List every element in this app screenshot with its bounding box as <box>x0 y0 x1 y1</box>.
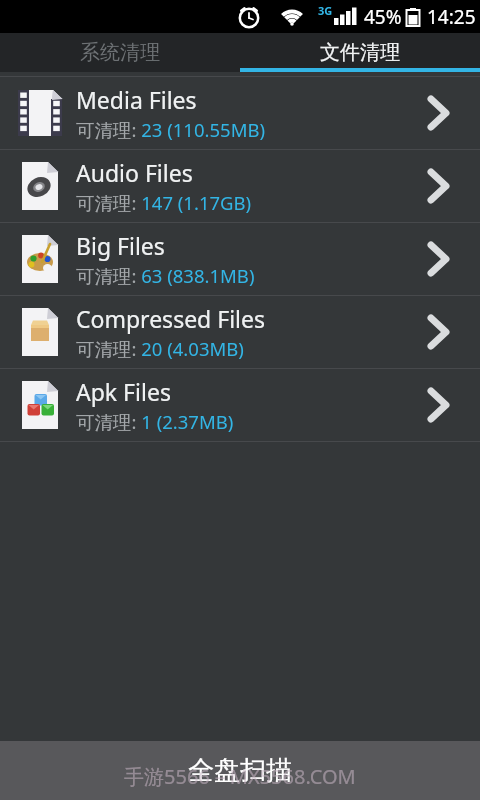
staticText: 可清理: 20 (4.03MB) <box>76 336 244 361</box>
button[interactable]: Audio Files <box>0 150 480 223</box>
staticText: 14:25 <box>427 4 476 30</box>
button[interactable]: Media Files <box>0 77 480 150</box>
staticText: 系统清理 <box>80 40 160 65</box>
staticText: 手游5566－MX5568.COM <box>124 763 356 790</box>
staticText: 可清理: 23 (110.55MB) <box>76 117 266 142</box>
staticText: 可清理: 1 (2.37MB) <box>76 409 234 434</box>
staticText: Media Files <box>76 84 197 115</box>
staticText: 文件清理 <box>320 40 400 65</box>
button[interactable]: 全盘扫描 <box>0 741 480 800</box>
staticText: Compressed Files <box>76 303 266 334</box>
button[interactable]: Apk Files <box>0 369 480 442</box>
staticText: 可清理: 63 (838.1MB) <box>76 263 255 288</box>
button[interactable]: Big Files <box>0 223 480 296</box>
button[interactable]: 系统清理 <box>0 33 240 72</box>
staticText: Apk Files <box>76 376 171 407</box>
button[interactable]: 文件清理 <box>240 33 480 72</box>
staticText: 45% <box>364 4 402 30</box>
staticText: 3G <box>318 3 333 18</box>
staticText: 可清理: 147 (1.17GB) <box>76 190 252 215</box>
staticText: Big Files <box>76 230 165 261</box>
staticText: 全盘扫描 <box>188 754 292 787</box>
staticText: Audio Files <box>76 157 193 188</box>
button[interactable]: Compressed Files <box>0 296 480 369</box>
